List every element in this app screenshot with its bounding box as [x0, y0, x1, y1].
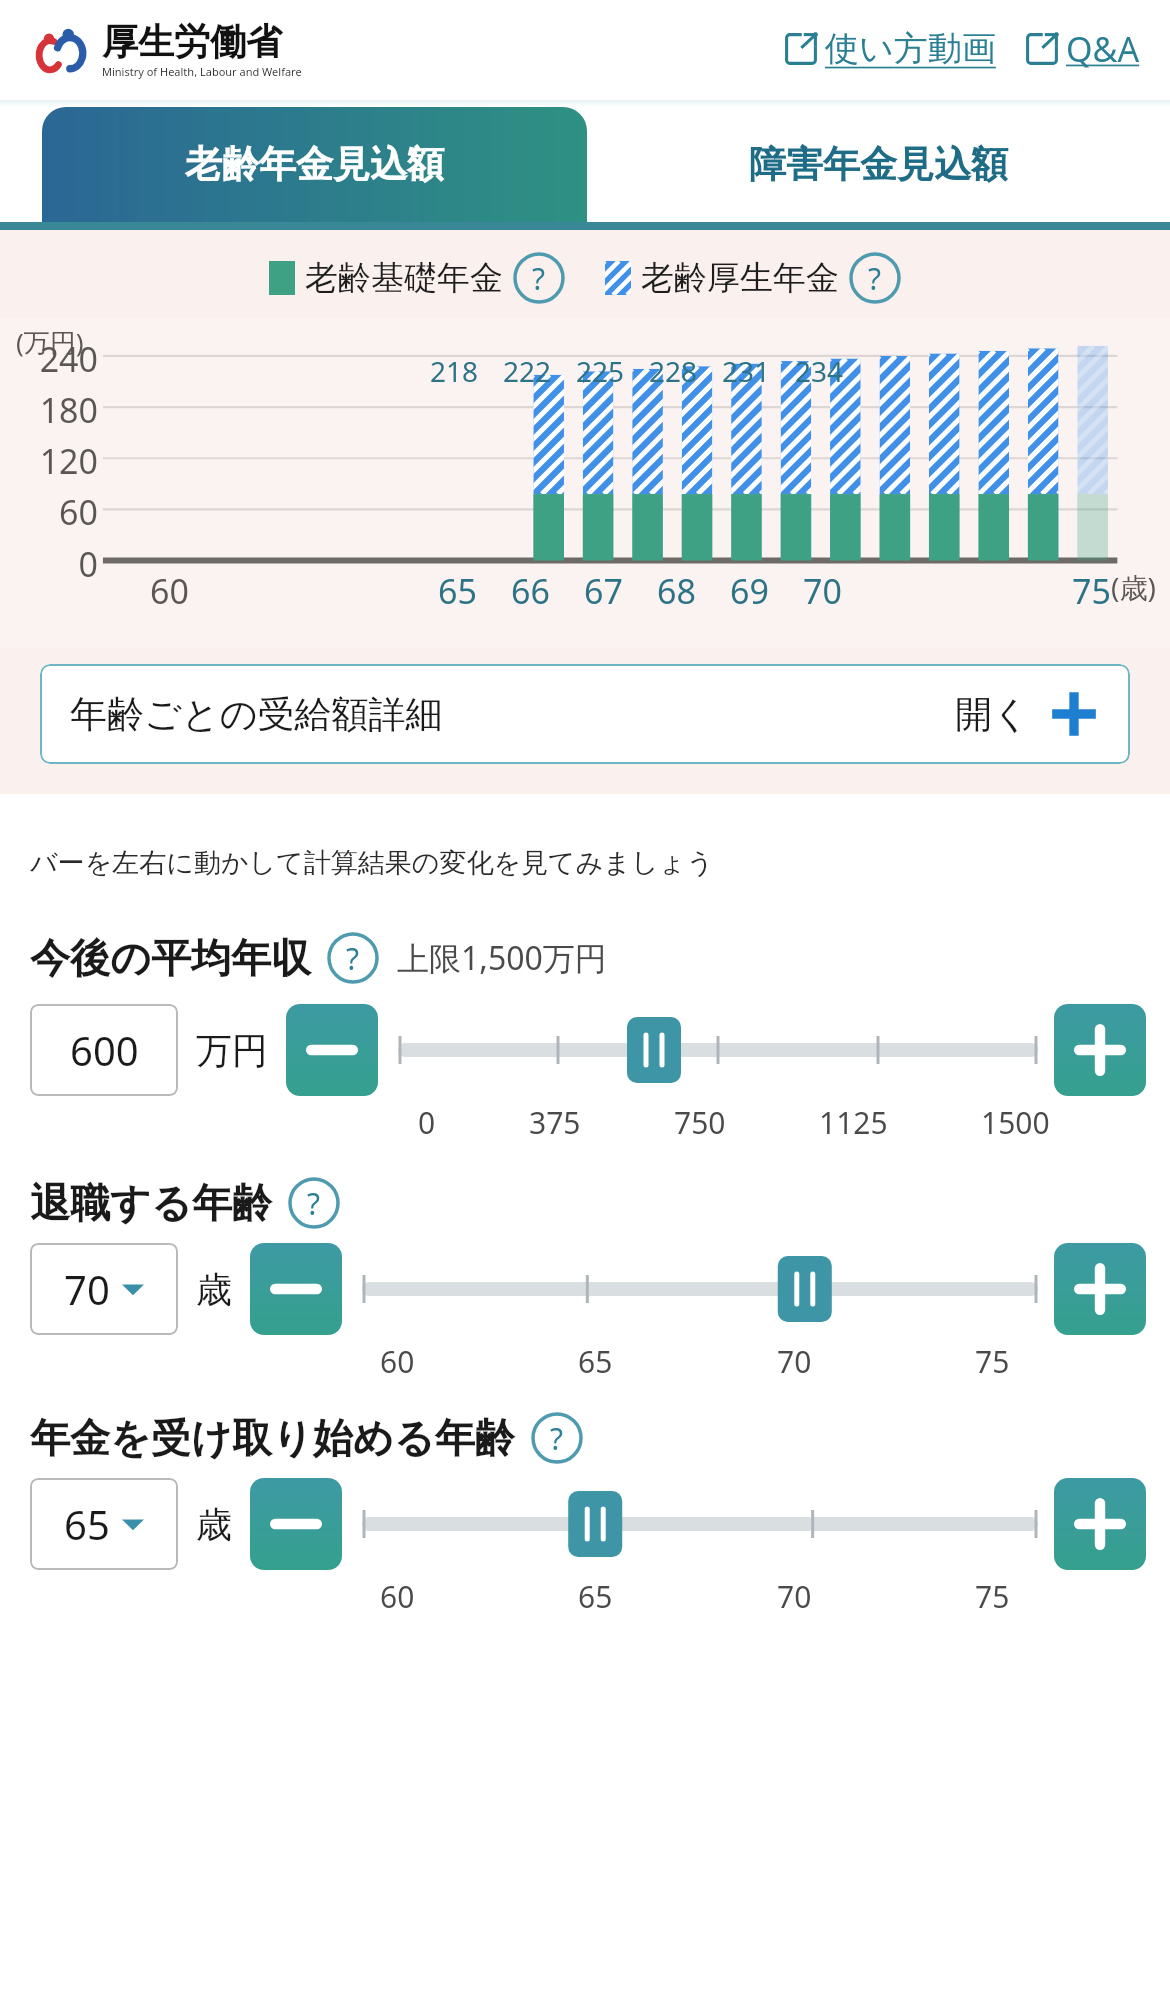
staticText: 231 [722, 352, 771, 390]
staticText: 60 [59, 489, 98, 535]
staticText: 75 [975, 1576, 1010, 1617]
staticText: 今後の平均年収 [30, 933, 311, 983]
button[interactable]: 説明 [288, 1177, 340, 1229]
staticText: 70 [777, 1576, 812, 1617]
staticText: 65 [64, 1497, 110, 1551]
staticText: 厚生労働省 [102, 19, 282, 64]
staticText: 120 [39, 438, 98, 484]
staticText: 万円 [196, 1028, 268, 1073]
staticText: 69 [730, 568, 769, 614]
button[interactable]: 老齢年金見込額 [42, 107, 587, 222]
staticText: Ministry of Health, Labour and Welfare [102, 64, 302, 79]
staticText: 年金を受け取り始める年齢 [30, 1413, 515, 1463]
staticText: 1125 [819, 1102, 888, 1143]
staticText: ? [307, 1183, 321, 1224]
button[interactable]: 増やす [1054, 1243, 1146, 1335]
button[interactable]: 600 [30, 1004, 178, 1096]
staticText: 開く [955, 691, 1030, 738]
staticText: ? [868, 258, 882, 299]
button[interactable]: 減らす [250, 1478, 342, 1570]
staticText: 障害年金見込額 [749, 141, 1008, 188]
staticText: 退職する年齢 [30, 1178, 272, 1228]
staticText: 750 [674, 1102, 726, 1143]
staticText: 老齢厚生年金 [641, 257, 839, 299]
button[interactable]: 使い方動画 [783, 27, 996, 70]
button[interactable]: 65 [30, 1478, 178, 1570]
staticText: 歳 [196, 1267, 232, 1312]
button[interactable]: 減らす [286, 1004, 378, 1096]
staticText: 65 [578, 1576, 613, 1617]
staticText: 180 [39, 387, 98, 433]
staticText: 使い方動画 [825, 27, 996, 70]
staticText: 70 [64, 1262, 110, 1316]
staticText: 1500 [981, 1102, 1050, 1143]
staticText: 75 [975, 1341, 1010, 1382]
button[interactable]: 増やす [1054, 1478, 1146, 1570]
staticText: 年齢ごとの受給額詳細 [70, 691, 443, 738]
staticText: 67 [584, 568, 623, 614]
staticText: 75 [1072, 568, 1111, 614]
button[interactable]: 説明 [513, 252, 565, 304]
staticText: 240 [39, 336, 98, 382]
staticText: 70 [777, 1341, 812, 1382]
staticText: ? [532, 258, 546, 299]
staticText: 228 [649, 352, 698, 390]
staticText: 65 [578, 1341, 613, 1382]
staticText: ? [550, 1418, 564, 1459]
button[interactable]: 年齢ごとの受給額詳細 [40, 664, 1130, 764]
staticText: 225 [576, 352, 625, 390]
staticText: 60 [380, 1576, 415, 1617]
staticText: バーを左右に動かして計算結果の変化を見てみましょう [30, 846, 714, 880]
button[interactable]: 70 [30, 1243, 178, 1335]
staticText: 375 [529, 1102, 581, 1143]
button[interactable]: 減らす [250, 1243, 342, 1335]
staticText: 60 [150, 568, 189, 614]
button[interactable]: スライダー [362, 1243, 1038, 1335]
staticText: ? [346, 938, 360, 979]
staticText: 歳 [196, 1502, 232, 1547]
button[interactable]: スライダー [362, 1478, 1038, 1570]
staticText: 0 [418, 1102, 436, 1143]
staticText: 222 [503, 352, 552, 390]
button[interactable]: 増やす [1054, 1004, 1146, 1096]
staticText: 65 [438, 568, 477, 614]
staticText: 70 [803, 568, 842, 614]
button[interactable]: 障害年金見込額 [587, 107, 1170, 222]
button[interactable]: 説明 [531, 1412, 583, 1464]
staticText: 上限1,500万円 [397, 936, 607, 980]
staticText: 234 [795, 352, 844, 390]
staticText: (歳) [1111, 568, 1156, 606]
staticText: 68 [657, 568, 696, 614]
button[interactable]: 説明 [849, 252, 901, 304]
button[interactable]: Q&A [1024, 26, 1140, 72]
staticText: 66 [511, 568, 550, 614]
button[interactable]: スライダー [398, 1004, 1038, 1096]
staticText: (万円) [16, 324, 84, 360]
staticText: 60 [380, 1341, 415, 1382]
staticText: 老齢年金見込額 [185, 141, 444, 188]
staticText: 600 [70, 1023, 139, 1077]
staticText: 0 [78, 541, 98, 587]
staticText: 218 [430, 352, 479, 390]
staticText: 老齢基礎年金 [305, 257, 503, 299]
button[interactable]: 説明 [327, 932, 379, 984]
staticText: Q&A [1066, 26, 1140, 72]
